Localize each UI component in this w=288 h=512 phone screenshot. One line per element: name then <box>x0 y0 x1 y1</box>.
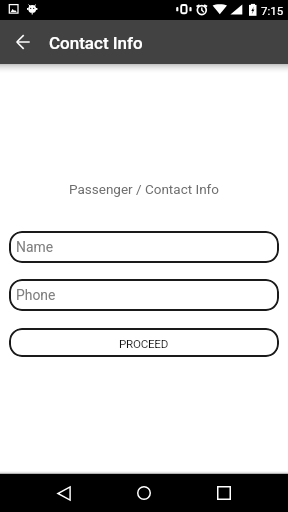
button[interactable]: PROCEED <box>9 328 279 357</box>
staticText: Phone <box>16 287 56 303</box>
button[interactable]: Phone <box>9 279 279 311</box>
button[interactable]: Recent apps <box>206 474 242 512</box>
button[interactable]: Back <box>46 474 82 512</box>
button[interactable]: Home <box>126 474 162 512</box>
staticText: Passenger / Contact Info <box>0 181 288 197</box>
button[interactable]: Name <box>9 231 279 263</box>
staticText: PROCEED <box>119 337 169 351</box>
button[interactable]: Navigate up <box>6 25 39 58</box>
staticText: Contact Info <box>49 33 143 53</box>
staticText: 7:15 <box>261 4 284 17</box>
staticText: Name <box>16 239 54 255</box>
